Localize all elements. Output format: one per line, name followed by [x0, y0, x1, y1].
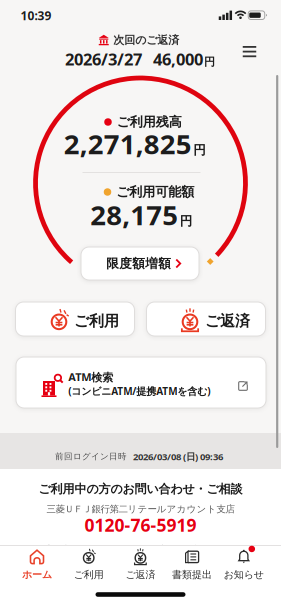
button[interactable]: ご返済	[146, 302, 265, 336]
staticText: 2026/3/27	[65, 48, 142, 70]
staticText: 2026/03/08 (日) 09:36	[133, 450, 223, 463]
staticText: 2,271,825	[64, 125, 192, 162]
staticText: 円	[193, 142, 206, 158]
button[interactable]: ご利用	[15, 302, 134, 336]
staticText: 次回のご返済	[113, 33, 179, 47]
staticText: 受付時間：9：00～17：00（土・日・祝日除く）	[42, 543, 239, 555]
staticText: ご返済	[125, 568, 155, 581]
button[interactable]: ご返済	[115, 548, 165, 582]
staticText: 0120-76-5919	[84, 513, 196, 537]
button[interactable]: 限度額増額	[81, 247, 199, 280]
staticText: お知らせ	[224, 568, 264, 581]
staticText: ご利用残高	[117, 114, 182, 130]
staticText: ATM検索	[68, 369, 113, 384]
staticText: 円	[204, 55, 215, 69]
staticText: (コンビニATM/提携ATMを含む)	[68, 384, 210, 398]
staticText: ご返済	[205, 312, 250, 330]
staticText: ご利用	[74, 312, 119, 330]
staticText: 28,175	[90, 196, 178, 233]
staticText: 円	[180, 213, 193, 229]
button[interactable]: お知らせ	[219, 548, 269, 582]
staticText: ご利用	[74, 568, 104, 581]
button[interactable]: 0120-76-5919	[84, 513, 196, 537]
button[interactable]: ATM検索	[16, 357, 266, 408]
staticText: 書類提出	[172, 568, 212, 581]
staticText: ホーム	[22, 568, 52, 581]
button[interactable]: ご利用	[64, 548, 114, 582]
staticText: ご利用中の方のお問い合わせ・ご相談	[38, 481, 242, 496]
staticText: 限度額増額	[106, 256, 171, 271]
button[interactable]: 書類提出	[167, 548, 217, 582]
staticText: 46,000	[153, 48, 203, 70]
staticText: 10:39	[20, 7, 51, 24]
staticText: 三菱ＵＦＪ銀行第二リテールアカウント支店	[46, 503, 234, 515]
staticText: ご利用可能額	[116, 184, 194, 200]
button[interactable]: ホーム	[12, 548, 62, 582]
staticText: 前回ログイン日時	[55, 451, 127, 462]
button[interactable]: メニュー	[235, 37, 264, 65]
